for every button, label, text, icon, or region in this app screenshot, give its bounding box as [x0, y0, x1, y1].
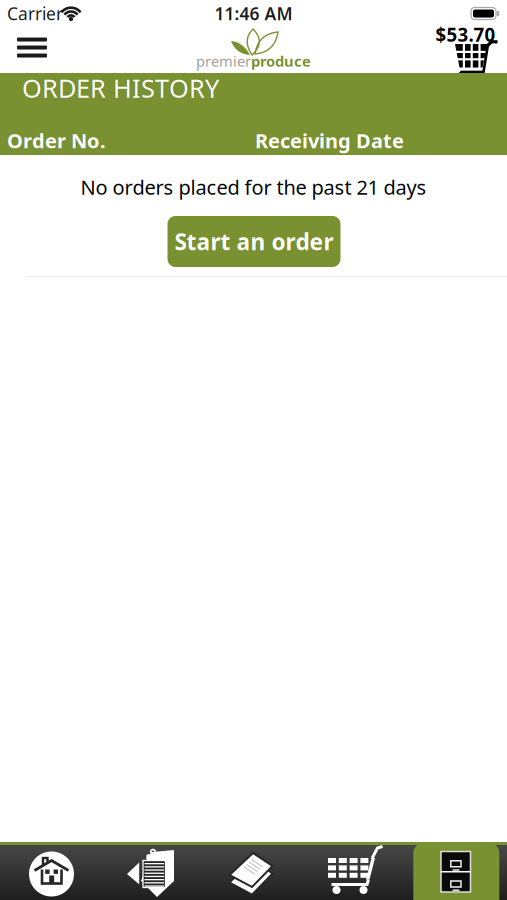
- staticText: $53.70: [435, 22, 495, 47]
- staticText: Receiving Date: [255, 127, 404, 154]
- staticText: Order No.: [7, 127, 106, 154]
- button[interactable]: Order Guide: [101, 843, 203, 900]
- staticText: 11:46 AM: [214, 2, 292, 25]
- staticText: Carrier: [7, 2, 63, 25]
- staticText: No orders placed for the past 21 days: [80, 174, 426, 200]
- button[interactable]: Start an order: [167, 216, 340, 267]
- button[interactable]: Catalog: [203, 843, 304, 900]
- staticText: ORDER HISTORY: [22, 71, 219, 105]
- button[interactable]: Order History: [406, 843, 507, 900]
- staticText: premier: [196, 51, 251, 71]
- button[interactable]: Cart: [304, 843, 406, 900]
- button[interactable]: Menu: [10, 31, 54, 65]
- button[interactable]: Cart: [434, 26, 502, 78]
- staticText: Start an order: [174, 226, 333, 256]
- staticText: produce: [251, 51, 311, 71]
- button[interactable]: Home: [0, 843, 101, 900]
